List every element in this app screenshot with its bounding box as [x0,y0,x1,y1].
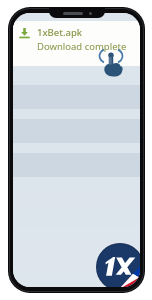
button[interactable]: Tap [95,47,127,79]
staticText: 1xBet.apk [37,26,83,39]
staticText: Download complete [37,40,127,53]
button[interactable]: 1xBet [96,243,140,287]
button[interactable]: Download [13,21,140,66]
other: Download [18,27,31,40]
